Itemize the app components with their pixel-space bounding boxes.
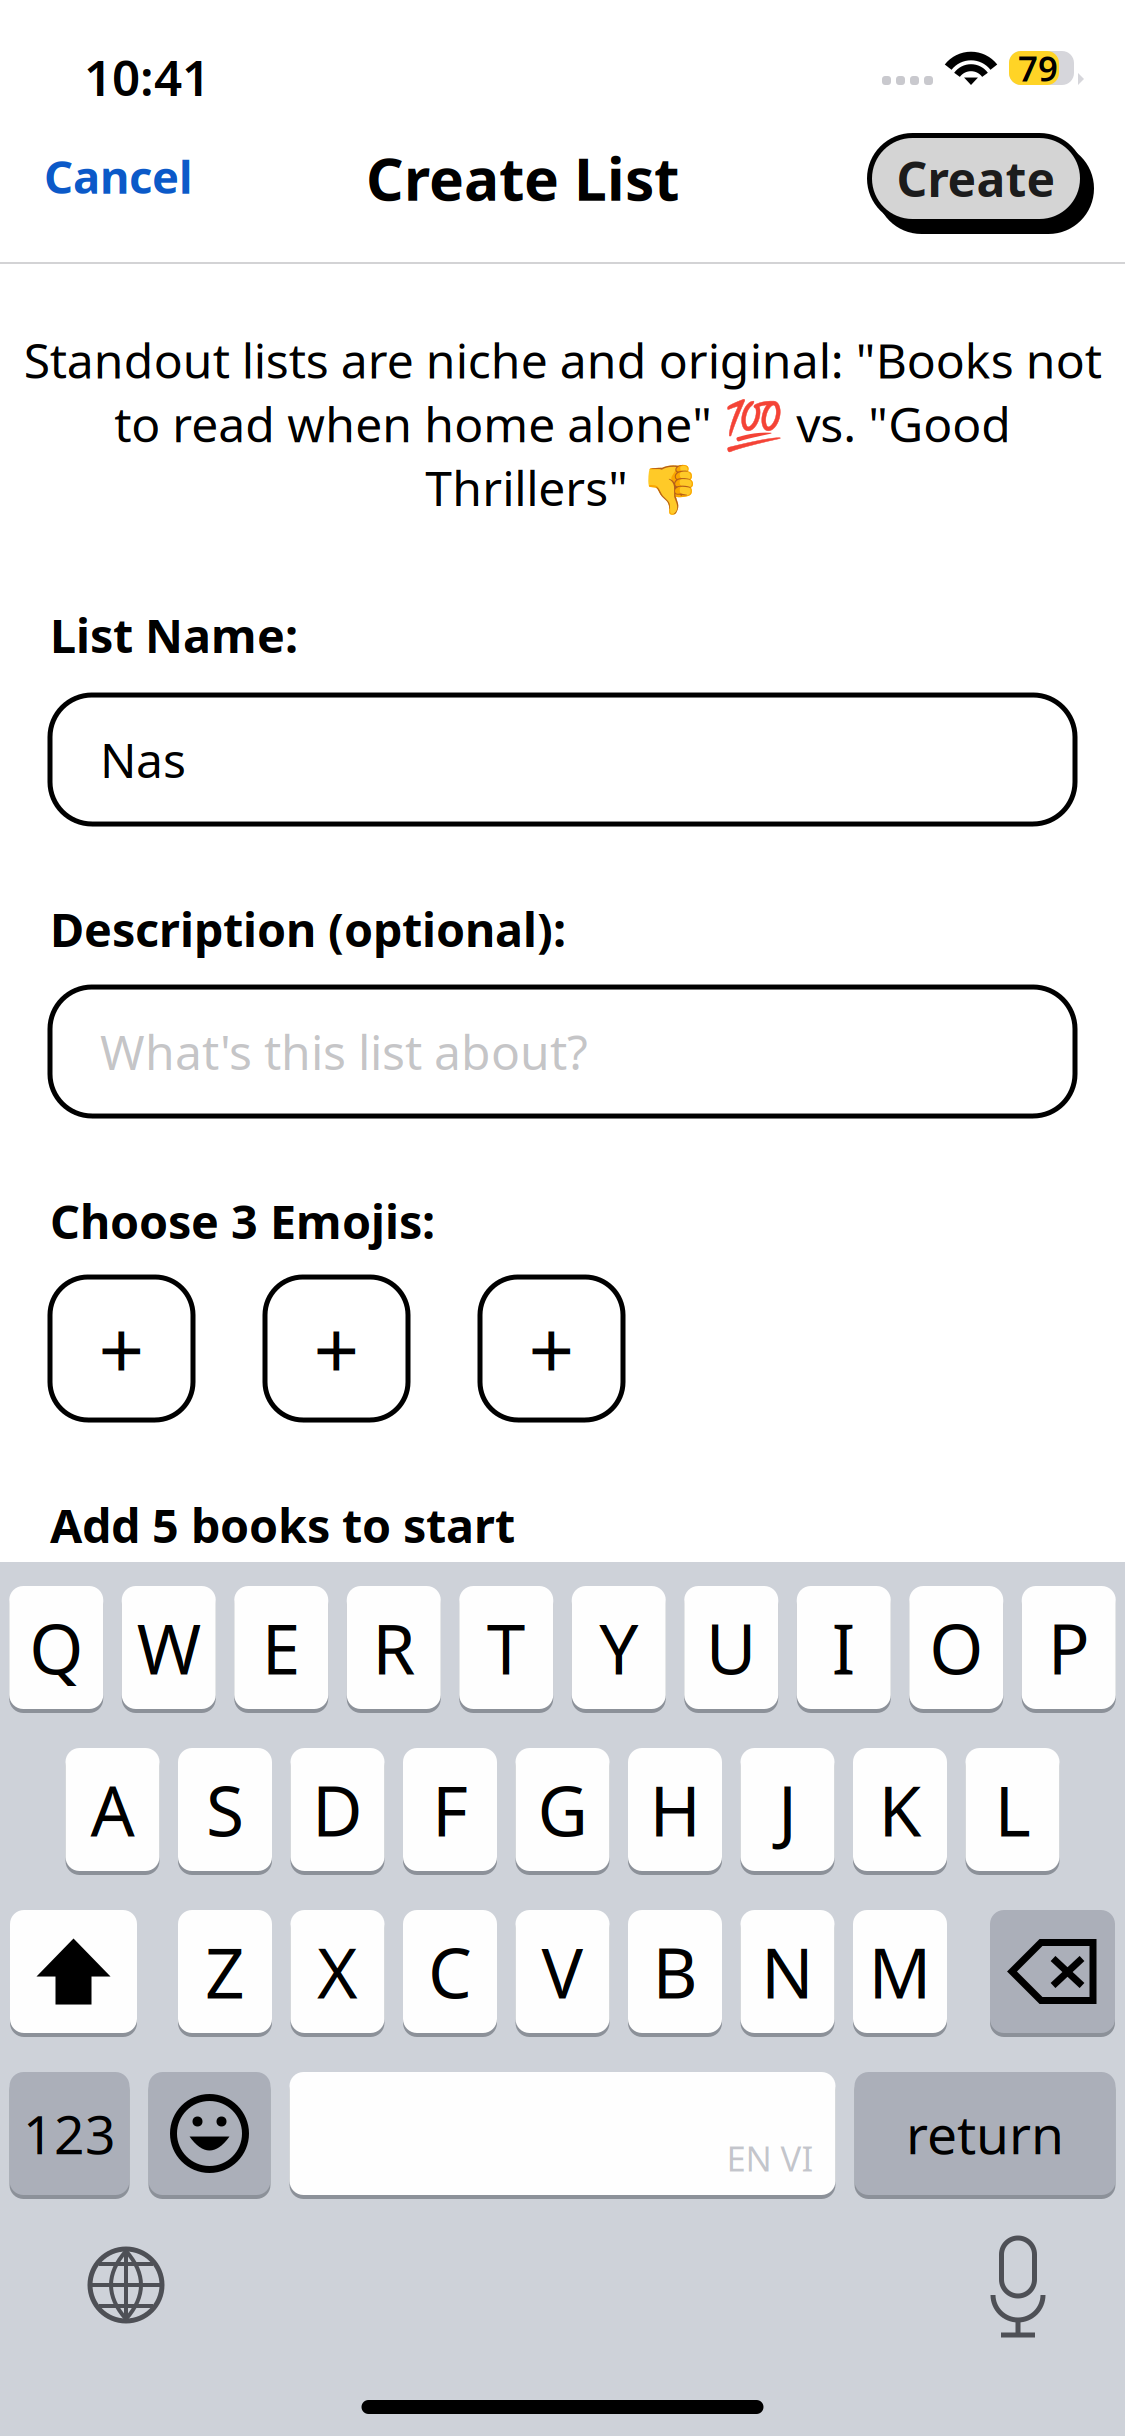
staticText: L [994, 1763, 1030, 1856]
button[interactable]: Add emoji [50, 1277, 193, 1420]
button[interactable]: Dictate [989, 2233, 1047, 2337]
staticText: + [528, 1295, 574, 1402]
staticText: Cancel [44, 146, 193, 206]
button[interactable]: Delete [990, 1910, 1115, 2033]
button[interactable]: return [854, 2072, 1115, 2195]
button[interactable]: E [234, 1586, 328, 1709]
button[interactable]: Z [178, 1910, 272, 2033]
button[interactable]: P [1022, 1586, 1116, 1709]
button[interactable]: Emoji [148, 2072, 270, 2195]
staticText: V [541, 1925, 583, 2018]
button[interactable]: G [515, 1748, 609, 1871]
staticText: M [868, 1925, 931, 2018]
button[interactable]: D [290, 1748, 384, 1871]
button[interactable]: U [684, 1586, 778, 1709]
staticText: Description (optional): [50, 898, 566, 960]
staticText: N [761, 1925, 814, 2018]
staticText: Z [205, 1925, 245, 2018]
button[interactable]: Next keyboard [88, 2247, 164, 2323]
staticText: B [652, 1925, 697, 2018]
staticText: P [1048, 1601, 1090, 1694]
button[interactable]: 123 [9, 2072, 129, 2195]
button[interactable]: Shift [10, 1910, 137, 2033]
staticText: A [90, 1763, 134, 1856]
staticText: Add 5 books to start [50, 1494, 515, 1556]
staticText: H [649, 1763, 700, 1856]
staticText: Standout lists are niche and original: "… [23, 328, 1101, 519]
staticText: Nas [100, 728, 186, 791]
button[interactable]: S [178, 1748, 272, 1871]
button[interactable]: L [965, 1748, 1059, 1871]
staticText: U [706, 1601, 757, 1694]
button[interactable]: M [853, 1910, 947, 2033]
staticText: Q [29, 1601, 83, 1694]
button[interactable]: Q [9, 1586, 103, 1709]
button[interactable]: C [403, 1910, 497, 2033]
staticText: X [317, 1925, 358, 2018]
staticText: EN VI [726, 2135, 813, 2181]
staticText: G [537, 1763, 587, 1856]
staticText: R [372, 1601, 415, 1694]
button[interactable]: I [797, 1586, 891, 1709]
staticText: E [262, 1601, 301, 1694]
staticText: Create [896, 147, 1055, 210]
staticText: T [487, 1601, 526, 1694]
button[interactable]: B [628, 1910, 722, 2033]
button[interactable]: Nas [50, 695, 1075, 824]
staticText: Choose 3 Emojis: [50, 1190, 435, 1252]
staticText: What's this list about? [100, 1020, 588, 1083]
button[interactable]: O [909, 1586, 1003, 1709]
staticText: List Name: [50, 604, 298, 666]
button[interactable]: R [347, 1586, 441, 1709]
button[interactable]: What's this list about? [50, 987, 1075, 1116]
staticText: return [906, 2098, 1064, 2169]
button[interactable]: N [740, 1910, 834, 2033]
button[interactable]: Add emoji [265, 1277, 408, 1420]
staticText: Y [599, 1601, 638, 1694]
button[interactable]: A [65, 1748, 159, 1871]
button[interactable]: V [515, 1910, 609, 2033]
button[interactable]: T [459, 1586, 553, 1709]
staticText: I [832, 1601, 856, 1694]
staticText: W [137, 1601, 201, 1694]
button[interactable]: space [289, 2072, 835, 2195]
staticText: C [428, 1925, 472, 2018]
staticText: D [312, 1763, 363, 1856]
staticText: F [432, 1763, 468, 1856]
button[interactable]: H [628, 1748, 722, 1871]
staticText: K [878, 1763, 921, 1856]
staticText: 123 [23, 2098, 116, 2169]
staticText: O [929, 1601, 983, 1694]
button[interactable]: F [403, 1748, 497, 1871]
button[interactable]: Y [572, 1586, 666, 1709]
staticText: S [206, 1763, 244, 1856]
staticText: + [98, 1295, 144, 1402]
button[interactable]: X [290, 1910, 384, 2033]
staticText: 10:41 [84, 44, 210, 109]
staticText: 79 [1018, 45, 1058, 91]
button[interactable]: W [122, 1586, 216, 1709]
staticText: Create List [366, 139, 679, 217]
button[interactable]: Cancel [18, 124, 219, 228]
staticText: + [313, 1295, 359, 1402]
staticText: J [778, 1763, 797, 1856]
button[interactable]: Add emoji [480, 1277, 623, 1420]
button[interactable]: J [740, 1748, 834, 1871]
button[interactable]: K [853, 1748, 947, 1871]
button[interactable]: Create [867, 133, 1094, 234]
